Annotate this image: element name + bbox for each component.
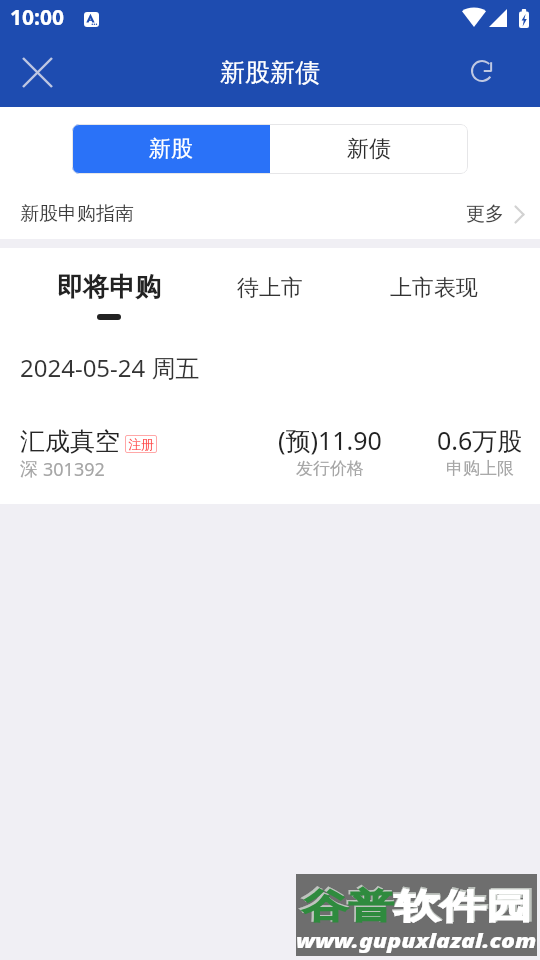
button[interactable]: Refresh: [457, 46, 507, 96]
staticText: 谷普: [302, 885, 394, 928]
button[interactable]: 新股: [72, 124, 270, 174]
button[interactable]: Close: [9, 44, 66, 101]
staticText: (预)11.90: [278, 423, 382, 457]
staticText: 新股申购指南: [20, 202, 134, 226]
button[interactable]: 新债: [270, 124, 468, 174]
staticText: 0.6万股: [437, 423, 523, 457]
staticText: 深: [20, 458, 38, 481]
staticText: 待上市: [237, 274, 303, 302]
staticText: 10:00: [10, 3, 64, 32]
staticText: 软件园: [394, 885, 532, 928]
button[interactable]: 待上市: [207, 252, 332, 328]
button[interactable]: 上市表现: [371, 252, 496, 328]
staticText: 汇成真空: [20, 426, 120, 457]
staticText: 新股: [149, 135, 193, 163]
button[interactable]: 新股申购指南: [0, 190, 540, 239]
staticText: 即将申购: [57, 271, 161, 304]
staticText: 新债: [347, 135, 391, 163]
staticText: 发行价格: [296, 458, 364, 479]
staticText: 新股新债: [220, 57, 320, 88]
staticText: 上市表现: [390, 274, 478, 302]
staticText: 注册: [128, 436, 154, 452]
staticText: 更多: [466, 202, 504, 226]
staticText: 301392: [43, 457, 105, 482]
staticText: 2024-05-24 周五: [20, 351, 200, 384]
button[interactable]: 即将申购: [20, 252, 197, 328]
staticText: 谷普软件园: [300, 884, 534, 928]
button[interactable]: 汇成真空: [0, 415, 540, 490]
staticText: 申购上限: [446, 458, 514, 479]
staticText: www.gupuxlazal.com: [296, 927, 537, 953]
